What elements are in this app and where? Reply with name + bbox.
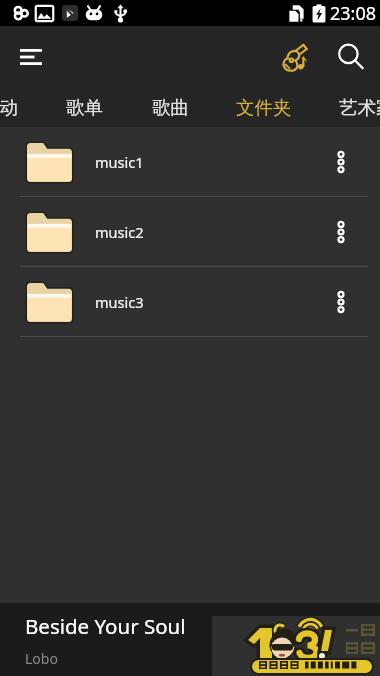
button[interactable]: music2 — [0, 197, 380, 267]
staticText: 文件夹 — [236, 96, 292, 119]
staticText: music2 — [95, 222, 144, 242]
button[interactable]: More options for music1 — [317, 138, 365, 186]
button[interactable]: music3 — [0, 267, 380, 337]
button[interactable]: Open navigation menu — [8, 34, 54, 80]
button[interactable]: 艺术家 — [316, 87, 380, 127]
staticText: 艺术家 — [339, 96, 380, 119]
button[interactable]: More options for music2 — [317, 208, 365, 256]
staticText: Lobo — [25, 649, 58, 668]
button[interactable]: 歌单 — [42, 87, 127, 127]
staticText: 歌单 — [66, 96, 103, 119]
staticText: 歌曲 — [152, 96, 189, 119]
button[interactable]: Music library — [271, 34, 317, 80]
staticText: music3 — [95, 292, 144, 312]
button[interactable]: music1 — [0, 127, 380, 197]
staticText: 23:08 — [330, 1, 377, 26]
staticText: Beside Your Soul — [25, 612, 186, 640]
button[interactable]: Search — [328, 34, 374, 80]
button[interactable]: 文件夹 — [213, 87, 315, 127]
button[interactable]: 活动 — [0, 87, 42, 127]
button[interactable]: More options for music3 — [317, 278, 365, 326]
staticText: music1 — [95, 152, 144, 172]
button[interactable]: 歌曲 — [128, 87, 213, 127]
staticText: 活动 — [0, 96, 18, 119]
